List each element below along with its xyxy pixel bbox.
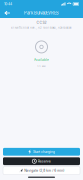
staticText: 61 Neftchilar Ave., AZ 1001 Baku, Azerba… xyxy=(11,26,72,29)
button[interactable]: Start charging xyxy=(3,148,80,156)
staticText: Navigate (2,8 km / 6 min) xyxy=(24,169,64,173)
button[interactable]: Back xyxy=(0,8,13,18)
staticText: Reserve xyxy=(38,159,51,163)
staticText: 22 kW xyxy=(37,65,46,68)
staticText: Start charging xyxy=(33,150,55,154)
button[interactable]: Navigate (2,8 km / 6 min) xyxy=(3,167,80,174)
button[interactable]: Reserve xyxy=(3,157,80,165)
staticText: Available xyxy=(34,58,49,62)
staticText: 10:44 xyxy=(4,2,12,6)
staticText: CCS2 xyxy=(36,20,46,25)
staticText: Park Bulvar/EVRES xyxy=(24,10,59,15)
